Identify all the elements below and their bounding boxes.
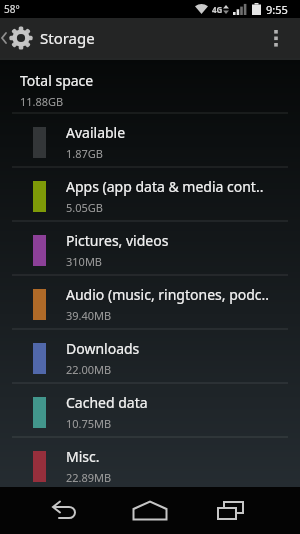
button[interactable] bbox=[126, 487, 174, 534]
staticText: 58° bbox=[4, 2, 20, 16]
button[interactable]: Audio (music, ringtones, podc.. bbox=[0, 276, 300, 328]
staticText: 1.87GB bbox=[66, 146, 103, 161]
staticText: 39.40MB bbox=[66, 308, 112, 323]
staticText: 4G bbox=[212, 4, 223, 15]
button[interactable] bbox=[39, 487, 87, 534]
staticText: Total space bbox=[20, 71, 94, 90]
staticText: Misc. bbox=[66, 447, 100, 466]
staticText: Cached data bbox=[66, 393, 148, 412]
staticText: 22.00MB bbox=[66, 362, 112, 377]
button[interactable]: Apps (app data & media cont.. bbox=[0, 168, 300, 220]
staticText: 10.75MB bbox=[66, 416, 112, 431]
staticText: Apps (app data & media cont.. bbox=[66, 177, 264, 196]
button[interactable]: Pictures, videos bbox=[0, 222, 300, 274]
button[interactable]: Total space bbox=[0, 60, 300, 112]
staticText: 9:55 bbox=[266, 2, 288, 17]
staticText: Audio (music, ringtones, podc.. bbox=[66, 285, 270, 304]
button[interactable]: Storage bbox=[0, 18, 95, 58]
staticText: Downloads bbox=[66, 339, 140, 358]
staticText: Storage bbox=[40, 28, 95, 48]
button[interactable]: Cached data bbox=[0, 384, 300, 436]
staticText: 310MB bbox=[66, 254, 103, 269]
staticText: Pictures, videos bbox=[66, 231, 169, 250]
staticText: Available bbox=[66, 123, 126, 142]
button[interactable]: Misc. bbox=[0, 438, 300, 490]
staticText: 5.05GB bbox=[66, 200, 103, 215]
staticText: 22.89MB bbox=[66, 470, 112, 485]
staticText: 11.88GB bbox=[20, 94, 64, 109]
button[interactable]: Available bbox=[0, 114, 300, 166]
button[interactable] bbox=[256, 18, 296, 58]
button[interactable] bbox=[206, 487, 254, 534]
button[interactable]: Downloads bbox=[0, 330, 300, 382]
